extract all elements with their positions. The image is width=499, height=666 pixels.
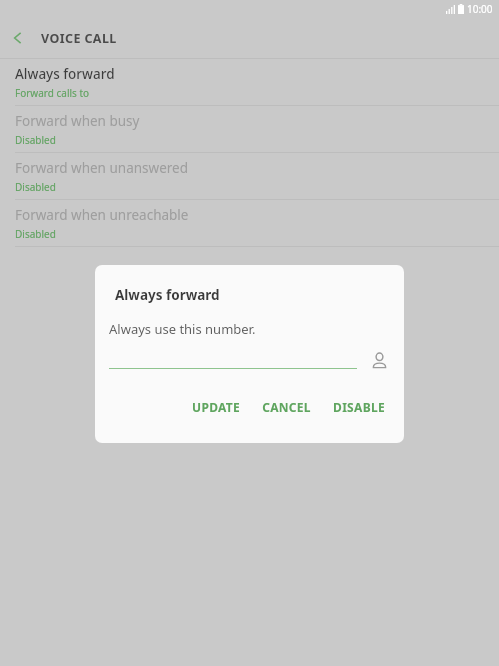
staticText: CANCEL (262, 399, 311, 415)
staticText: 10:00 (467, 2, 493, 16)
button[interactable]: Forward when unanswered (0, 153, 499, 199)
staticText: Disabled (15, 227, 56, 241)
button[interactable]: Select contact (366, 347, 392, 373)
staticText: Forward when unanswered (15, 159, 188, 177)
button[interactable]: Forward when unreachable (0, 200, 499, 246)
staticText: Forward when unreachable (15, 206, 189, 224)
staticText: Always use this number. (109, 320, 256, 338)
button[interactable]: Back (0, 20, 36, 56)
staticText: Disabled (15, 180, 56, 194)
button[interactable]: DISABLE (329, 393, 389, 421)
button[interactable]: UPDATE (188, 393, 244, 421)
button[interactable]: Forward when busy (0, 106, 499, 152)
staticText: VOICE CALL (41, 30, 117, 47)
staticText: Always forward (115, 286, 220, 304)
staticText: DISABLE (333, 399, 385, 415)
button[interactable] (109, 351, 357, 369)
staticText: Forward when busy (15, 112, 140, 130)
staticText: Disabled (15, 133, 56, 147)
staticText: UPDATE (192, 399, 240, 415)
staticText: Forward calls to (15, 86, 90, 100)
staticText: Always forward (15, 65, 115, 83)
button[interactable]: CANCEL (258, 393, 315, 421)
button[interactable]: Always forward (0, 59, 499, 105)
